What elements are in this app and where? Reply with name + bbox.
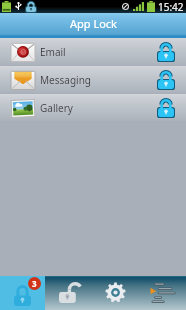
staticText: App Lock bbox=[70, 16, 117, 31]
button[interactable]: Gallery bbox=[0, 94, 186, 122]
button[interactable]: Unlocked apps bbox=[45, 276, 92, 310]
button[interactable]: Settings bbox=[92, 276, 139, 310]
staticText: 3 bbox=[32, 278, 37, 289]
button[interactable]: Locked apps bbox=[0, 276, 45, 310]
staticText: Gallery bbox=[40, 101, 73, 115]
button[interactable]: Email bbox=[0, 38, 186, 66]
staticText: 15:42 bbox=[158, 0, 184, 13]
button[interactable]: Messaging bbox=[0, 66, 186, 94]
button[interactable]: Logs bbox=[139, 276, 186, 310]
staticText: Messaging bbox=[40, 73, 91, 87]
staticText: Email bbox=[40, 45, 66, 59]
